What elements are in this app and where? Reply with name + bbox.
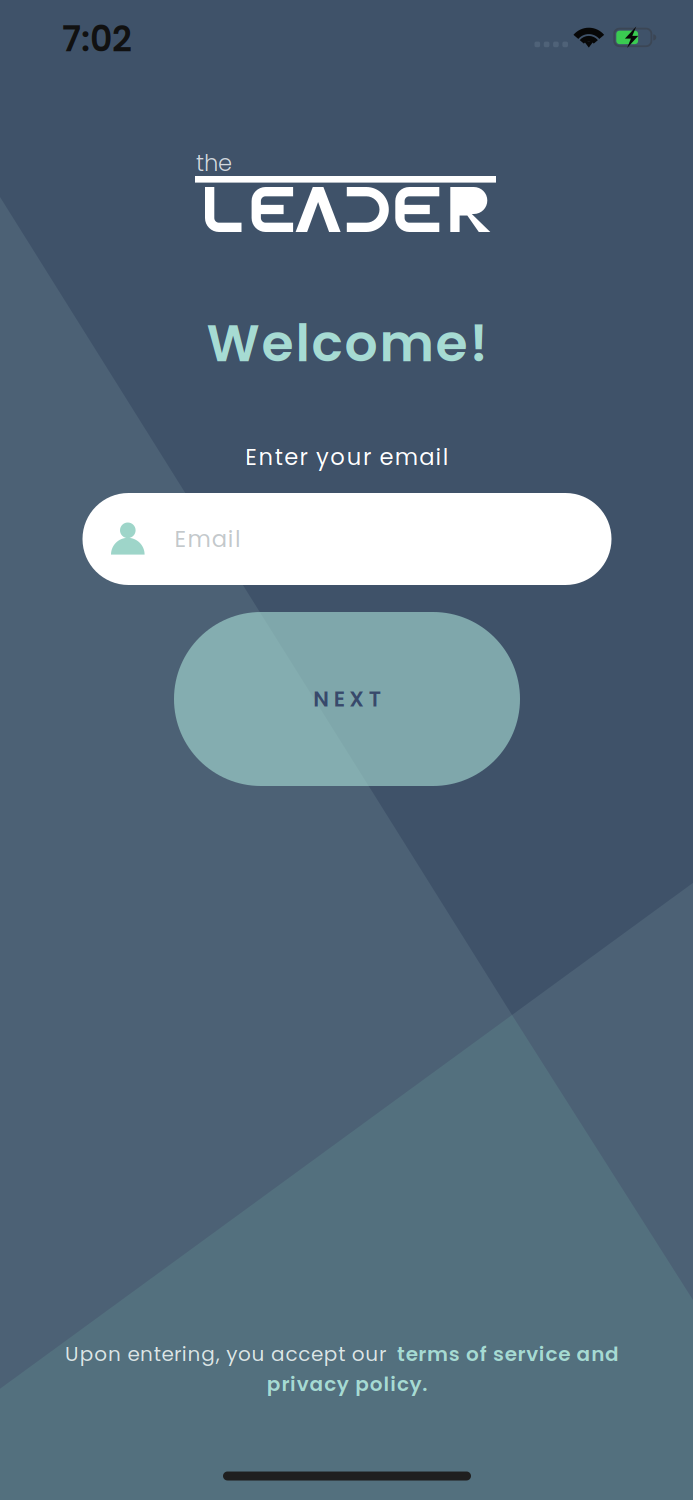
staticText: NEXT (313, 684, 381, 714)
staticText: terms of service and (397, 1340, 619, 1368)
staticText: Welcome! (206, 307, 487, 379)
staticText: privacy policy. (267, 1370, 427, 1398)
staticText: Enter your email (245, 441, 449, 473)
button[interactable]: Email (82, 493, 611, 585)
staticText: Upon entering, you accept our (65, 1340, 392, 1368)
staticText: Email (174, 523, 241, 555)
button[interactable]: Upon entering, you accept our (47, 1339, 647, 1399)
staticText: the (196, 147, 232, 179)
staticText: 7:02 (62, 15, 132, 63)
button[interactable]: NEXT (174, 612, 520, 786)
